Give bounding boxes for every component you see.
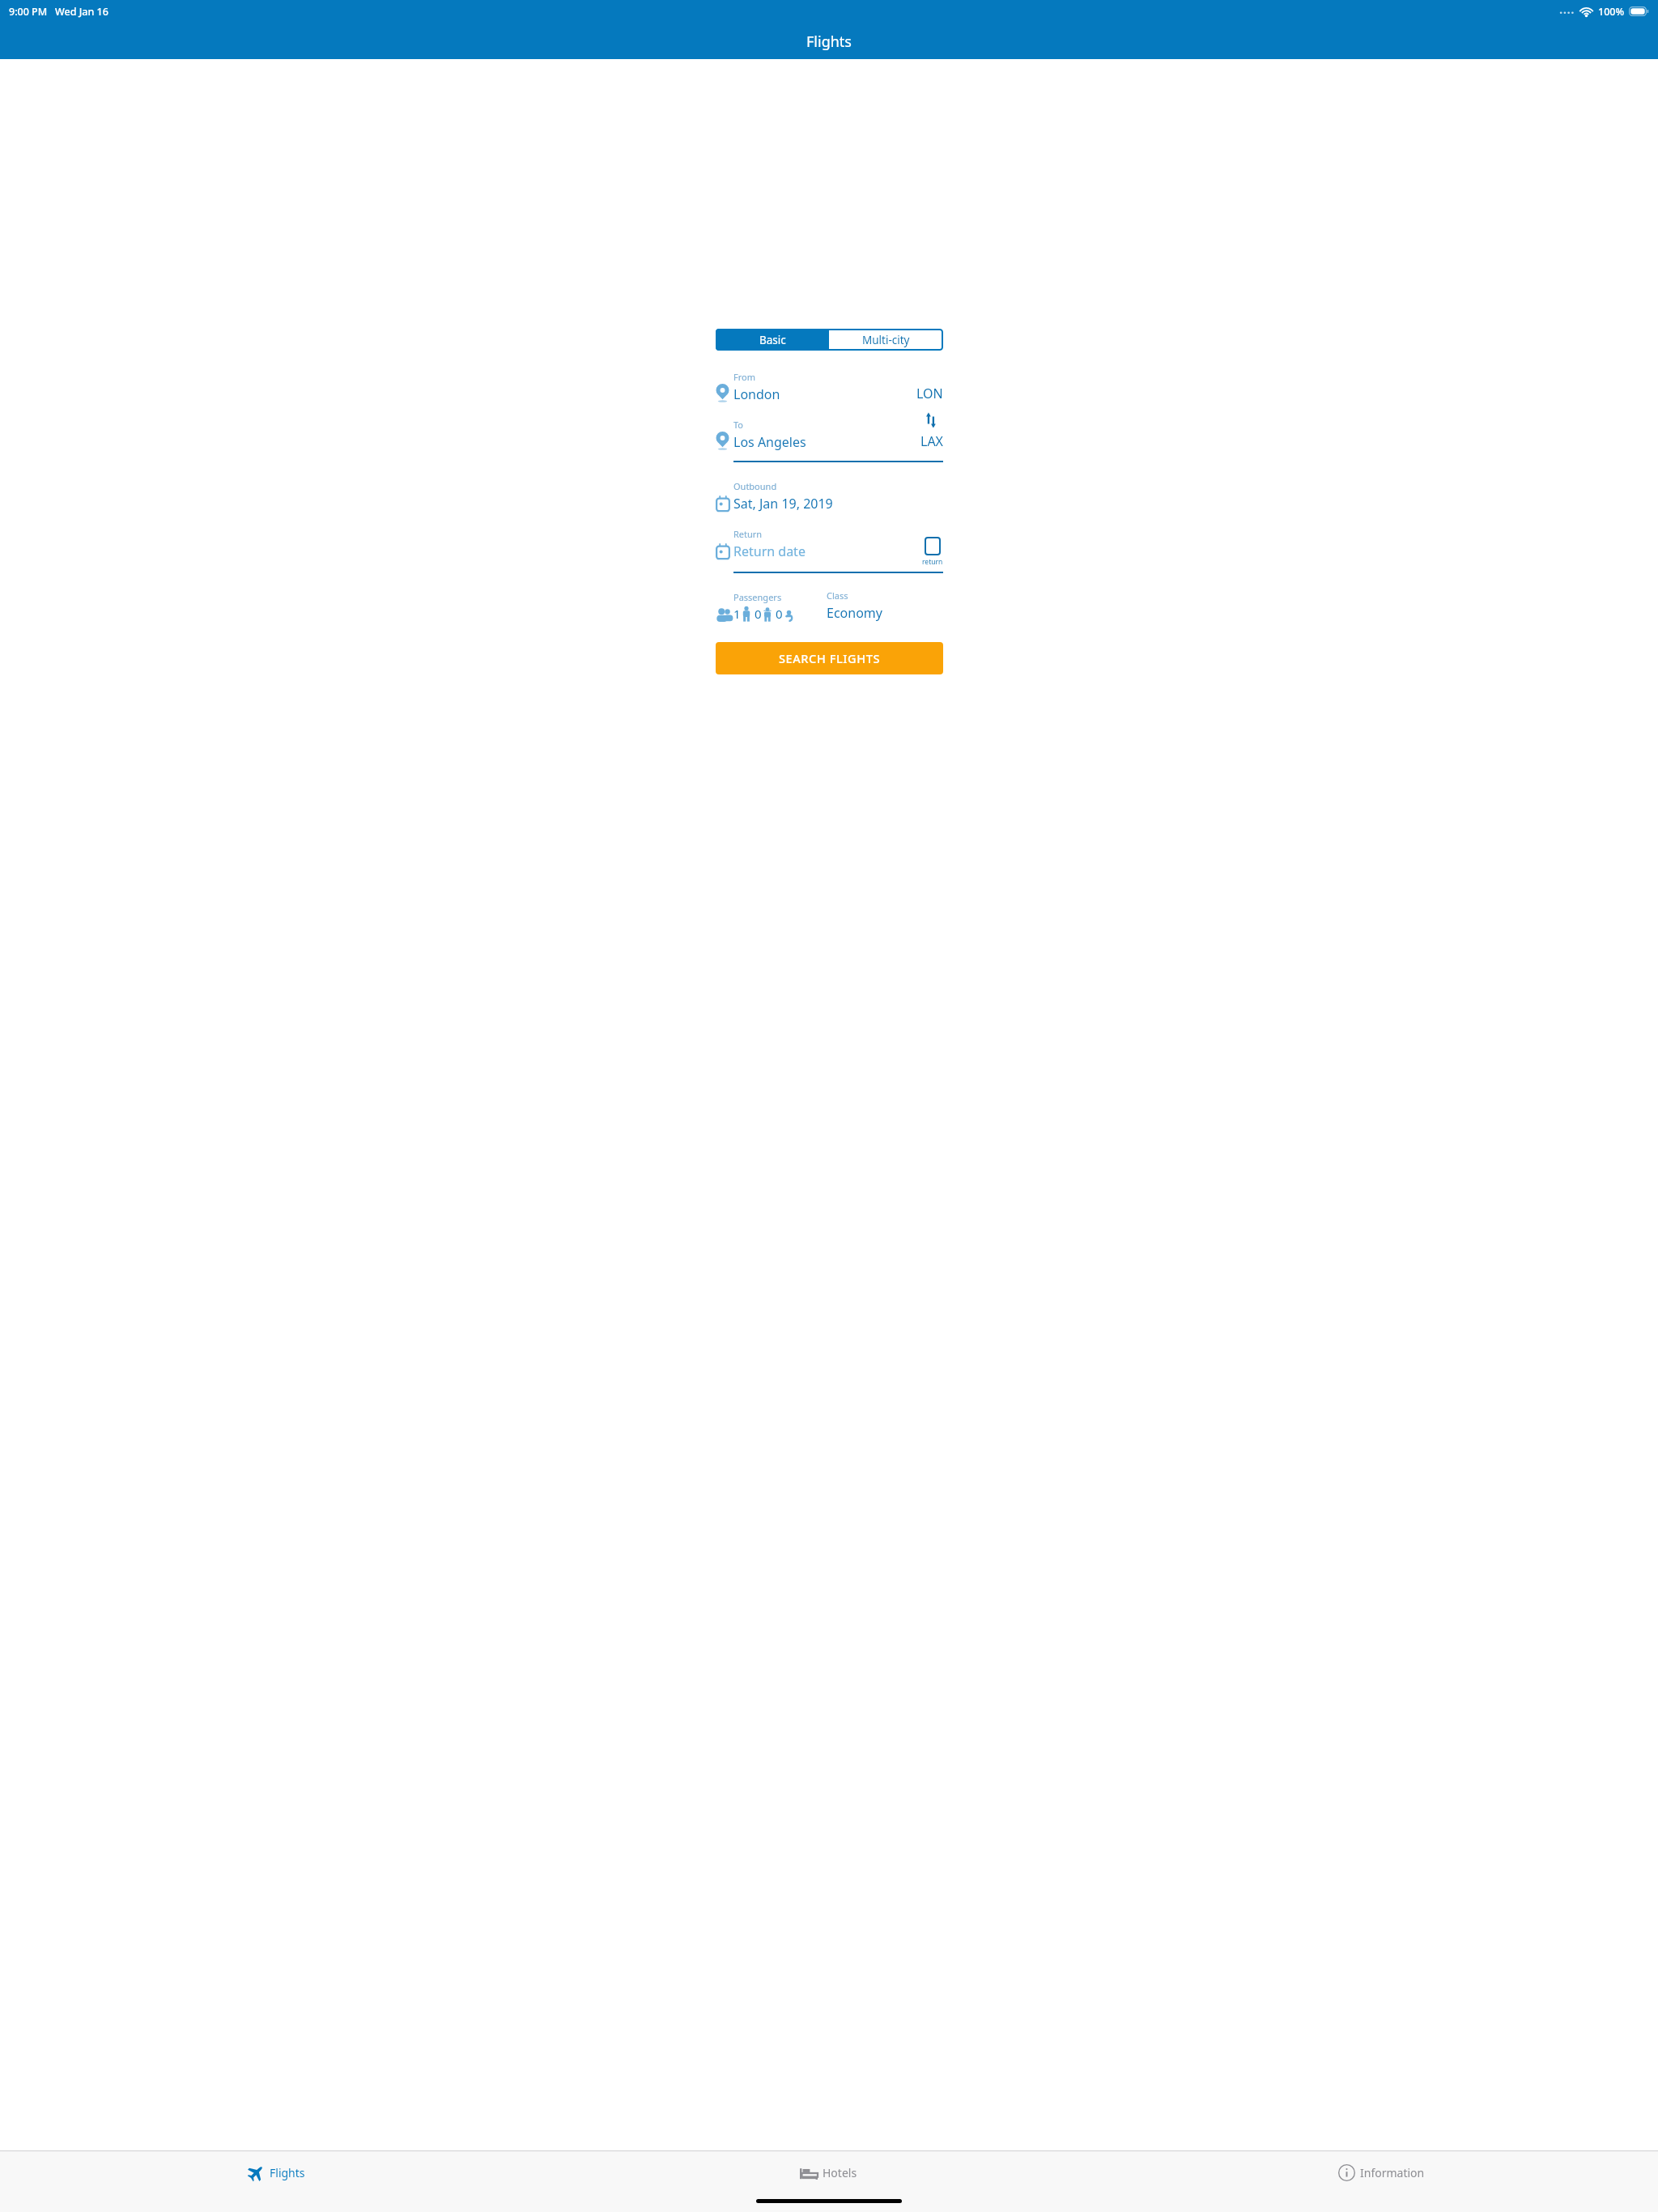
- staticText: Flights: [806, 32, 852, 52]
- staticText: Passengers: [733, 591, 782, 603]
- button[interactable]: Passengers: [716, 591, 827, 622]
- staticText: Los Angeles: [733, 433, 806, 451]
- button[interactable]: SEARCH FLIGHTS: [716, 642, 943, 674]
- button[interactable]: To: [716, 419, 943, 451]
- staticText: Hotels: [823, 2165, 857, 2180]
- staticText: Wed Jan 16: [55, 5, 108, 19]
- staticText: London: [733, 385, 780, 403]
- staticText: Flights: [270, 2165, 305, 2180]
- staticText: LON: [916, 385, 943, 402]
- staticText: Sat, Jan 19, 2019: [733, 495, 833, 513]
- button[interactable]: return: [922, 537, 943, 567]
- staticText: 9:00 PM: [9, 5, 48, 19]
- staticText: return: [922, 557, 943, 567]
- button[interactable]: From: [716, 371, 943, 403]
- staticText: Multi-city: [862, 333, 910, 347]
- staticText: Basic: [759, 333, 786, 347]
- staticText: To: [733, 419, 744, 431]
- staticText: 0: [755, 606, 762, 622]
- staticText: 100%: [1598, 5, 1625, 19]
- button[interactable]: Return: [716, 528, 922, 560]
- staticText: Class: [827, 589, 848, 602]
- button[interactable]: Basic: [716, 329, 829, 351]
- button[interactable]: Outbound: [716, 480, 943, 513]
- button[interactable]: Class: [827, 589, 943, 622]
- button[interactable]: Flights: [0, 2151, 552, 2193]
- staticText: SEARCH FLIGHTS: [779, 650, 880, 666]
- staticText: From: [733, 371, 755, 383]
- button[interactable]: Swap origin and destination: [919, 408, 943, 432]
- staticText: Outbound: [733, 480, 777, 492]
- staticText: Information: [1360, 2165, 1425, 2180]
- staticText: Economy: [827, 604, 882, 622]
- staticText: 0: [776, 606, 783, 622]
- staticText: LAX: [920, 432, 943, 450]
- staticText: Return date: [733, 542, 806, 560]
- button[interactable]: Multi-city: [829, 329, 943, 351]
- button[interactable]: Information: [1105, 2151, 1658, 2193]
- staticText: Return: [733, 528, 763, 540]
- staticText: 1: [733, 606, 741, 622]
- button[interactable]: Hotels: [552, 2151, 1105, 2193]
